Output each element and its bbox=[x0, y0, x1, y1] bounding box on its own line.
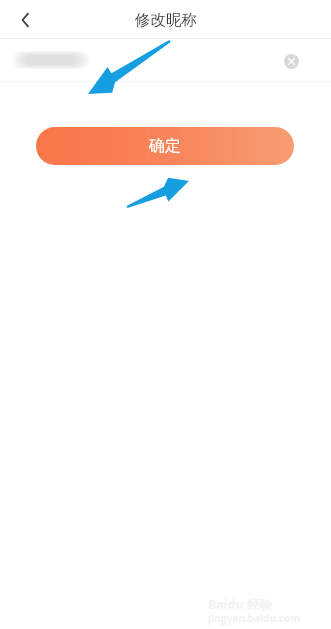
staticText: 修改昵称 bbox=[135, 10, 197, 30]
button[interactable]: Clear text bbox=[276, 46, 306, 76]
button[interactable]: 确定 bbox=[36, 127, 294, 165]
staticText: jingyan.baidu.com bbox=[208, 611, 300, 625]
staticText: Baidu 经验 bbox=[208, 596, 272, 613]
button[interactable] bbox=[0, 39, 331, 81]
button[interactable]: Back bbox=[3, 1, 49, 38]
staticText: 确定 bbox=[149, 136, 181, 156]
